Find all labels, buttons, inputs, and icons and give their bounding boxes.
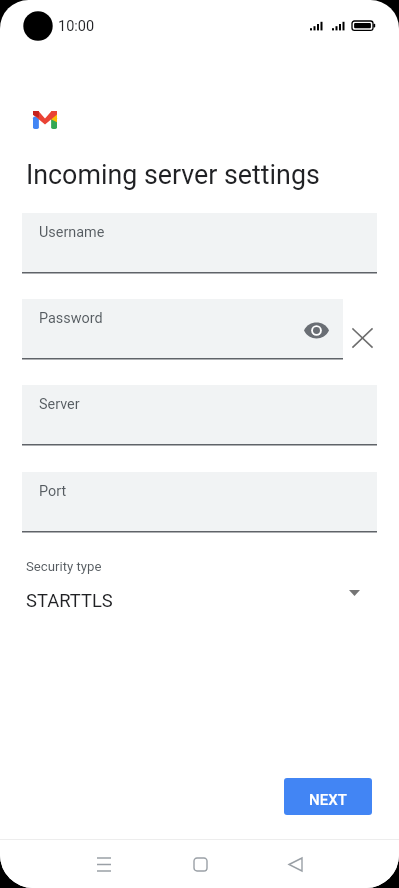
staticText: NEXT xyxy=(309,791,347,809)
button[interactable]: Security type xyxy=(26,552,377,616)
staticText: Security type xyxy=(26,559,102,574)
button[interactable]: Password xyxy=(22,299,343,358)
button[interactable]: Recent apps xyxy=(74,840,134,888)
staticText: Incoming server settings xyxy=(26,159,320,190)
staticText: Username xyxy=(39,224,105,241)
button[interactable]: Server xyxy=(22,385,377,444)
button[interactable]: Clear password xyxy=(338,314,386,362)
staticText: Password xyxy=(39,310,103,327)
button[interactable]: Back xyxy=(265,840,325,888)
button[interactable]: NEXT xyxy=(284,778,372,815)
staticText: STARTTLS xyxy=(26,590,113,612)
button[interactable]: Username xyxy=(22,213,377,272)
staticText: Server xyxy=(39,396,80,413)
button[interactable]: Show password xyxy=(298,313,334,347)
staticText: Port xyxy=(39,483,67,500)
button[interactable]: Port xyxy=(22,472,377,531)
staticText: 10:00 xyxy=(58,18,95,35)
button[interactable]: Home xyxy=(170,840,230,888)
